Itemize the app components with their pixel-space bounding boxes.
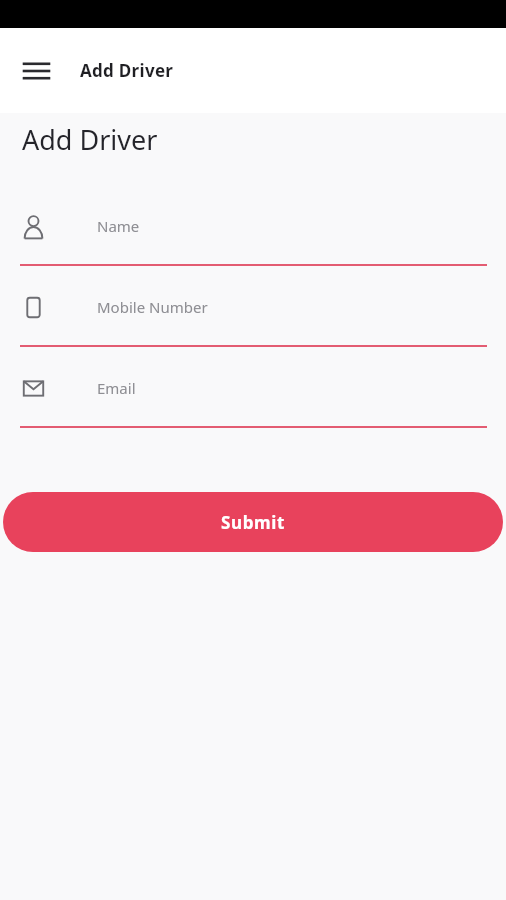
button[interactable]: Name [0, 203, 506, 266]
button[interactable]: Mobile Number [0, 284, 506, 347]
staticText: Email [97, 378, 136, 398]
staticText: Add Driver [22, 121, 158, 158]
staticText: Name [97, 216, 140, 236]
staticText: Mobile Number [97, 297, 208, 317]
button[interactable]: Submit [3, 492, 503, 552]
button[interactable]: Open navigation menu [14, 49, 58, 93]
button[interactable]: Email [0, 365, 506, 428]
staticText: Add Driver [80, 59, 174, 82]
staticText: Submit [221, 511, 285, 534]
